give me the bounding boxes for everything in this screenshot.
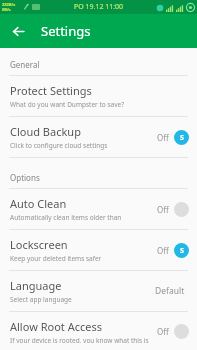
staticText: Click to configure cloud settings [10,141,108,150]
staticText: 0B/s [2,7,11,12]
staticText: General [10,59,197,70]
staticText: Default [155,285,185,297]
staticText: 232B/s [2,2,16,7]
staticText: S [180,246,184,256]
staticText: Select app language [10,295,72,304]
button[interactable]: Auto Clean [0,189,197,229]
button[interactable]: Language [0,271,197,311]
staticText: Off [157,245,169,256]
staticText: Cloud Backup [10,124,81,139]
button[interactable]: Back [6,19,30,43]
staticText: Keep your deleted items safer [10,254,102,263]
button[interactable]: Toggle [174,324,189,339]
button[interactable]: Toggle [174,202,189,217]
staticText: Auto Clean [10,196,67,211]
staticText: Options [10,172,197,183]
staticText: Automatically clean items older than [10,213,122,222]
staticText: Off [157,132,169,143]
button[interactable]: Lockscreen [0,230,197,270]
button[interactable]: Protect Settings [0,76,197,116]
staticText: If your device is rooted, you know what … [10,336,149,343]
button[interactable]: Allow Root Access [0,312,197,350]
button[interactable]: Toggle [174,130,189,145]
button[interactable]: Toggle [174,243,189,258]
staticText: PO 19.12 11:00 [74,2,124,12]
staticText: Settings [41,22,91,40]
staticText: What do you want Dumpster to save? [10,100,124,109]
staticText: Allow Root Access [10,319,102,334]
staticText: Off [157,204,169,215]
button[interactable]: Cloud Backup [0,117,197,157]
staticText: Off [157,326,169,337]
staticText: S [180,133,184,143]
staticText: Language [10,278,62,293]
staticText: Protect Settings [10,83,92,98]
staticText: Lockscreen [10,237,68,252]
